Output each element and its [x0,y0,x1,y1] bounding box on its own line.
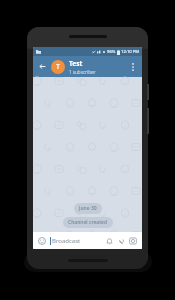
button[interactable]: Camera [127,235,139,247]
staticText: Channel created [68,219,108,226]
button[interactable]: More options [126,60,139,73]
button[interactable]: Notifications [103,235,115,247]
button[interactable]: T [51,56,126,77]
staticText: T [56,62,60,72]
staticText: 12:10 PM [121,49,140,55]
button[interactable]: Attach [115,235,127,247]
staticText: Broadcast [52,237,81,245]
staticText: 96% [107,49,116,55]
button[interactable]: Back [36,60,49,73]
staticText: Test [69,59,83,68]
staticText: June 30 [79,205,97,212]
staticText: 1 subscriber [69,69,96,75]
button[interactable]: Emoji [36,235,48,247]
button[interactable]: Broadcast [50,232,103,249]
